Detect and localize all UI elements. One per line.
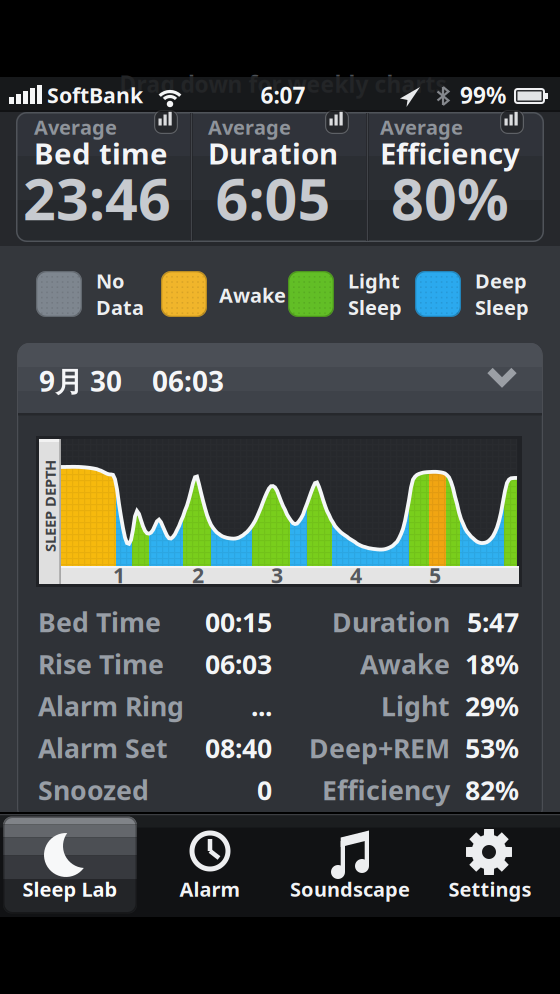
staticText: 06:03 xyxy=(152,362,224,400)
staticText: 53% xyxy=(465,730,519,766)
staticText: 82% xyxy=(465,772,519,808)
staticText: Duration xyxy=(332,604,450,640)
staticText: Alarm xyxy=(179,876,240,902)
staticText: Efficiency xyxy=(380,133,520,172)
staticText: Rise Time xyxy=(38,646,164,682)
staticText: Drag down for weekly charts xyxy=(119,69,446,99)
staticText: Deep xyxy=(475,267,527,294)
staticText: Duration xyxy=(208,133,338,172)
staticText: Awake xyxy=(360,646,450,682)
button[interactable]: Alarm xyxy=(140,814,280,917)
staticText: 6:07 xyxy=(260,80,305,110)
staticText: 1 xyxy=(113,561,125,589)
staticText: 18% xyxy=(465,646,519,682)
staticText: 29% xyxy=(465,688,519,724)
staticText: Average xyxy=(208,114,291,140)
staticText: Average xyxy=(34,114,117,140)
staticText: Average xyxy=(380,114,463,140)
staticText: Bed time xyxy=(34,133,168,172)
staticText: Settings xyxy=(448,876,531,902)
button[interactable]: Sleep Lab xyxy=(0,814,140,917)
staticText: 06:03 xyxy=(205,646,272,682)
staticText: 80% xyxy=(391,160,509,236)
button[interactable]: Soundscape xyxy=(280,814,420,917)
button[interactable]: Averages xyxy=(16,112,544,242)
staticText: Efficiency xyxy=(322,772,450,808)
staticText: Soundscape xyxy=(290,876,410,902)
staticText: Light xyxy=(381,688,450,724)
staticText: 5:47 xyxy=(467,604,519,640)
staticText: Snoozed xyxy=(38,772,149,808)
staticText: Bed Time xyxy=(38,604,161,640)
staticText: 4 xyxy=(350,561,362,589)
staticText: Sleep Lab xyxy=(22,876,117,902)
button[interactable]: Settings xyxy=(420,814,560,917)
staticText: 6:05 xyxy=(215,160,330,236)
staticText: ... xyxy=(251,688,272,724)
staticText: 0 xyxy=(257,772,272,808)
staticText: 99% xyxy=(460,80,506,110)
button[interactable]: 9月 30 06:03 xyxy=(18,343,542,415)
staticText: 9月 30 xyxy=(39,362,122,400)
staticText: 23:46 xyxy=(23,160,171,236)
staticText: SLEEP DEPTH xyxy=(4,496,96,516)
staticText: 2 xyxy=(192,561,204,589)
staticText: Sleep xyxy=(348,294,402,321)
staticText: 00:15 xyxy=(205,604,272,640)
staticText: Light xyxy=(348,267,400,294)
staticText: Data xyxy=(96,294,144,321)
staticText: Sleep xyxy=(475,294,529,321)
staticText: Awake xyxy=(219,282,286,308)
staticText: 3 xyxy=(271,561,283,589)
staticText: SoftBank xyxy=(47,81,143,109)
staticText: Deep+REM xyxy=(309,730,450,766)
staticText: Alarm Set xyxy=(38,730,168,766)
staticText: 08:40 xyxy=(205,730,272,766)
staticText: No xyxy=(96,267,125,294)
staticText: Alarm Ring xyxy=(38,688,184,724)
staticText: 5 xyxy=(429,561,441,589)
